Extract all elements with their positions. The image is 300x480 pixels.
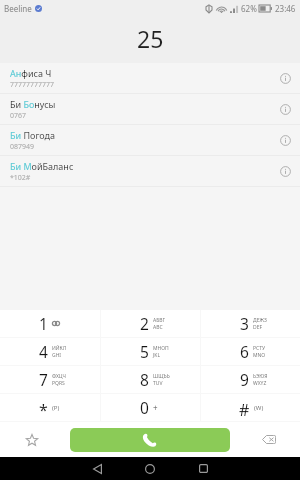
staticText: 1 xyxy=(39,313,48,334)
button[interactable]: Backspace xyxy=(230,422,300,457)
button[interactable]: Recents xyxy=(188,457,218,480)
staticText: 0767 xyxy=(10,111,27,121)
staticText: ABC xyxy=(153,324,163,331)
staticText: ДЕЖЗ xyxy=(253,317,267,324)
staticText: РСТУ xyxy=(253,345,266,352)
staticText: 087949 xyxy=(10,142,35,152)
staticText: ИЙКЛ xyxy=(52,345,67,352)
button[interactable]: 8 xyxy=(101,366,200,393)
button[interactable]: Details xyxy=(270,63,300,94)
button[interactable]: Back xyxy=(82,457,112,480)
staticText: 62% xyxy=(241,3,257,14)
staticText: WXYZ xyxy=(253,380,267,387)
staticText: JKL xyxy=(153,352,161,359)
button[interactable]: Details xyxy=(270,94,300,125)
staticText: + xyxy=(153,402,158,413)
button[interactable]: Favorites xyxy=(0,422,70,457)
staticText: ЬЭЮЯ xyxy=(253,373,268,380)
button[interactable]: 1 xyxy=(0,310,100,337)
staticText: Би Погода xyxy=(10,129,55,141)
button[interactable]: Би МойБаланс xyxy=(0,156,300,187)
staticText: MNO xyxy=(253,352,266,359)
button[interactable]: Call xyxy=(70,428,230,452)
staticText: 4 xyxy=(39,341,48,362)
staticText: АБВГ xyxy=(153,317,166,324)
button[interactable]: 5 xyxy=(101,338,200,365)
button[interactable]: 4 xyxy=(0,338,100,365)
staticText: DEF xyxy=(253,324,263,331)
staticText: * xyxy=(39,399,48,421)
button[interactable]: Home xyxy=(135,457,165,480)
staticText: (W) xyxy=(254,404,264,412)
button[interactable]: Details xyxy=(270,156,300,187)
staticText: 25 xyxy=(137,23,164,54)
staticText: 9 xyxy=(240,369,249,390)
button[interactable]: Анфиса Ч xyxy=(0,63,300,94)
staticText: 6 xyxy=(240,341,249,362)
staticText: *102# xyxy=(10,173,31,183)
staticText: 77777777777 xyxy=(10,80,55,90)
button[interactable]: 6 xyxy=(201,338,300,365)
button[interactable]: Би Бонусы xyxy=(0,94,300,125)
button[interactable]: Би Погода xyxy=(0,125,300,156)
button[interactable]: 3 xyxy=(201,310,300,337)
button[interactable]: 9 xyxy=(201,366,300,393)
staticText: ФХЦЧ xyxy=(52,373,66,380)
button[interactable]: 7 xyxy=(0,366,100,393)
staticText: 23:46 xyxy=(275,3,296,14)
button[interactable]: Details xyxy=(270,125,300,156)
staticText: МНОП xyxy=(153,345,169,352)
staticText: 3 xyxy=(240,313,249,334)
staticText: GHI xyxy=(52,352,62,359)
staticText: Би МойБаланс xyxy=(10,160,74,172)
staticText: 0 xyxy=(140,397,149,418)
staticText: 5 xyxy=(140,341,149,362)
staticText: PQRS xyxy=(52,380,65,387)
staticText: TUV xyxy=(153,380,163,387)
staticText: Би Бонусы xyxy=(10,98,56,110)
button[interactable]: 0 xyxy=(101,394,200,421)
staticText: ШЩЪЫ xyxy=(153,373,170,380)
staticText: 8 xyxy=(140,369,149,390)
staticText: Анфиса Ч xyxy=(10,67,52,79)
staticText: # xyxy=(239,399,250,421)
staticText: Beeline xyxy=(4,3,32,14)
staticText: 2 xyxy=(140,313,149,334)
button[interactable]: * xyxy=(0,394,100,421)
button[interactable]: 2 xyxy=(101,310,200,337)
staticText: (P) xyxy=(52,404,60,412)
button[interactable]: # xyxy=(201,394,300,421)
staticText: 7 xyxy=(39,369,48,390)
